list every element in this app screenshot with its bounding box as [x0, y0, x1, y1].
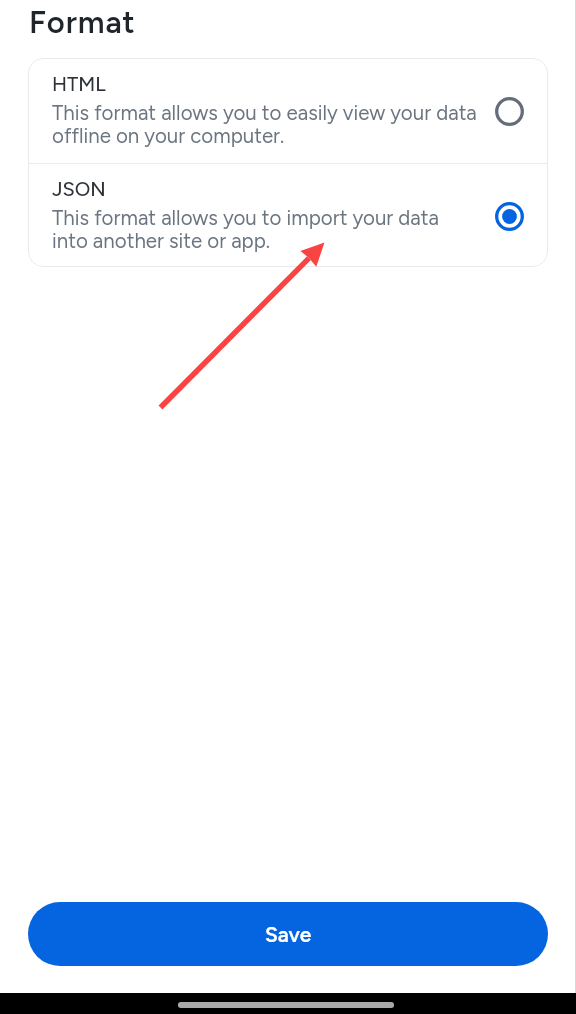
- button[interactable]: Save: [28, 902, 548, 966]
- staticText: Save: [265, 922, 312, 947]
- staticText: Format: [29, 4, 136, 41]
- button[interactable]: JSON: [28, 164, 548, 267]
- button[interactable]: HTML format: [491, 93, 527, 129]
- staticText: HTML: [52, 72, 106, 96]
- staticText: JSON: [52, 177, 106, 201]
- staticText: This format allows you to easily view yo…: [52, 101, 477, 148]
- button[interactable]: JSON format, selected: [491, 198, 527, 234]
- button[interactable]: HTML: [28, 58, 548, 163]
- staticText: This format allows you to import your da…: [52, 206, 439, 253]
